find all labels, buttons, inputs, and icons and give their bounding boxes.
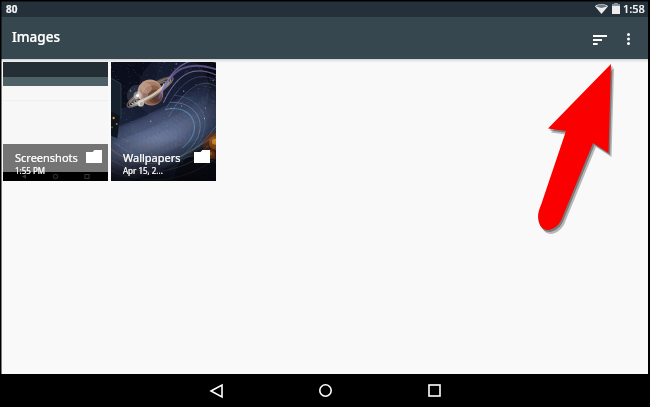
button[interactable]: Home: [305, 374, 345, 407]
staticText: Apr 15, 2...: [123, 165, 163, 176]
staticText: Screenshots: [15, 150, 78, 165]
staticText: Images: [12, 28, 60, 46]
staticText: 1:55 PM: [15, 165, 46, 176]
staticText: Wallpapers: [123, 150, 181, 165]
button[interactable]: Back: [196, 374, 236, 407]
button[interactable]: Recents: [414, 374, 454, 407]
button[interactable]: Wallpapers: [111, 62, 216, 181]
button[interactable]: More options: [610, 18, 646, 60]
staticText: 80: [6, 2, 18, 16]
staticText: 1:58: [623, 1, 645, 16]
button[interactable]: Sort: [582, 19, 618, 61]
button[interactable]: Screenshots: [3, 62, 108, 181]
